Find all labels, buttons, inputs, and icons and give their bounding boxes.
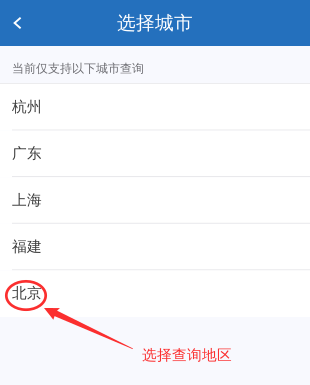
staticText: 选择查询地区 (142, 346, 232, 364)
button[interactable]: 杭州 (0, 84, 310, 131)
staticText: 北京 (12, 284, 42, 302)
button[interactable]: 北京 (0, 270, 310, 317)
staticText: 当前仅支持以下城市查询 (12, 61, 144, 76)
button[interactable]: Back (0, 0, 34, 46)
button[interactable]: 福建 (0, 224, 310, 270)
staticText: 选择城市 (117, 11, 193, 34)
staticText: 杭州 (12, 98, 42, 116)
button[interactable]: 上海 (0, 177, 310, 224)
staticText: 广东 (12, 144, 42, 162)
staticText: 上海 (12, 191, 42, 209)
button[interactable]: 广东 (0, 131, 310, 177)
staticText: 福建 (12, 238, 42, 256)
